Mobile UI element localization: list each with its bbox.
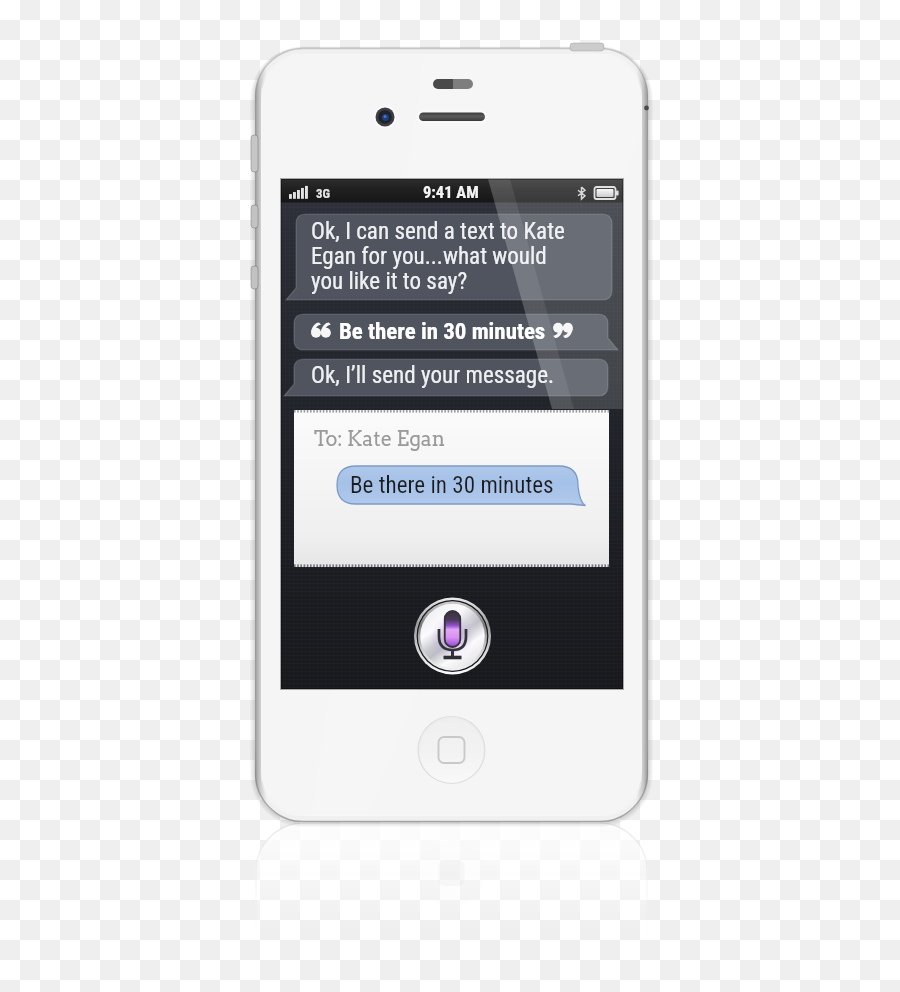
staticText: Ok, I’ll send your message.: [311, 362, 555, 389]
staticText: To: Kate Egan: [314, 427, 446, 451]
staticText: 3G: [316, 186, 330, 201]
staticText: Be there in 30 minutes: [350, 472, 554, 499]
staticText: 9:41 AM: [423, 183, 479, 202]
staticText: Ok, I can send a text to Kate Egan for y…: [311, 218, 565, 295]
button[interactable]: Siri microphone: [413, 596, 493, 676]
staticText: Be there in 30 minutes: [339, 318, 546, 345]
button[interactable]: Home: [418, 716, 486, 784]
